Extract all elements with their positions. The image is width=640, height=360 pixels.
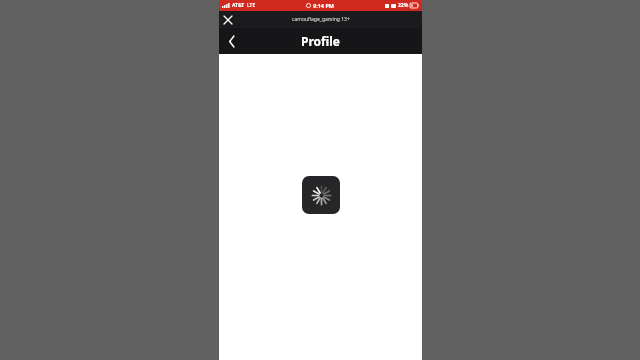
staticText: LTE	[247, 2, 256, 9]
staticText: AT&T	[232, 2, 245, 9]
staticText: camouflage_gaming 13+	[292, 16, 350, 23]
staticText: Profile	[301, 33, 341, 49]
staticText: 9:14 PM	[313, 2, 335, 9]
button[interactable]: Back	[219, 28, 245, 54]
staticText: 22%	[398, 2, 409, 9]
button[interactable]: Close	[219, 11, 236, 28]
